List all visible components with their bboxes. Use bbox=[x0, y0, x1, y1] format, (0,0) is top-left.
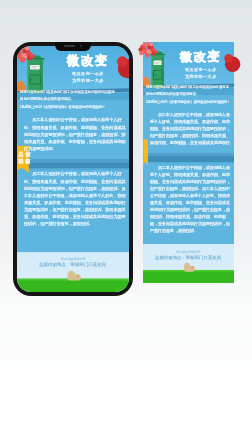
staticText: 每次改变一小步 bbox=[185, 67, 217, 72]
staticText: 箱 bbox=[25, 158, 31, 165]
staticText: 为我节能一大步 bbox=[185, 74, 217, 79]
staticText: 裁 bbox=[18, 158, 24, 165]
staticText: 为我节能一大步 bbox=[72, 78, 104, 83]
staticText: 员工本人遇到不公平待遇，或发现他人收受个人好处、指明来属关系、弄虚作假、盗窃财物… bbox=[24, 171, 126, 226]
staticText: OA系统上找到《合理化建议单》发起被采纳的有奖励哦！ bbox=[146, 99, 231, 104]
staticText: 总裁信箱地点：审核部门口茶水间 bbox=[155, 255, 222, 261]
staticText: 同事们发现本部门或其他部门的工作流程或其他方面有可以改进 bbox=[146, 85, 231, 89]
staticText: 的地方需要提出的合理化改进建议。 bbox=[146, 92, 199, 96]
staticText: 员工本人遇到不公平待遇，或发现他人收受个人好处、指明来属关系、弄虚作假、盗窃财物… bbox=[24, 117, 126, 151]
staticText: 员工本人遇到不公平待遇，或发现他人收受个人好处、指明来属关系、弄虚作假、盗窃财物… bbox=[150, 165, 233, 234]
staticText: 意见书面材料投寄 bbox=[176, 250, 201, 254]
staticText: 员工本人遇到不公平待遇，或发现他人收受个人好处、指明来属关系、弄虚作假、盗窃财物… bbox=[150, 112, 233, 146]
staticText: 总 bbox=[18, 151, 24, 158]
staticText: OA系统上找到《合理化建议单》发起被采纳的有奖励哦！ bbox=[20, 104, 106, 109]
staticText: 同事们发现本部门或其他部门的工作流程或其他方面有可以改进 bbox=[20, 90, 115, 94]
staticText: 每次改变一小步 bbox=[72, 71, 104, 76]
staticText: 信 bbox=[25, 151, 31, 158]
staticText: 总裁信箱地点：审核部门口茶水间 bbox=[39, 262, 107, 268]
staticText: 的地方需要提出的合理化改进建议。 bbox=[20, 97, 74, 101]
staticText: 微改变 bbox=[67, 53, 109, 68]
staticText: 微改变 bbox=[180, 49, 221, 64]
staticText: 意见书面材料投寄 bbox=[61, 257, 86, 261]
